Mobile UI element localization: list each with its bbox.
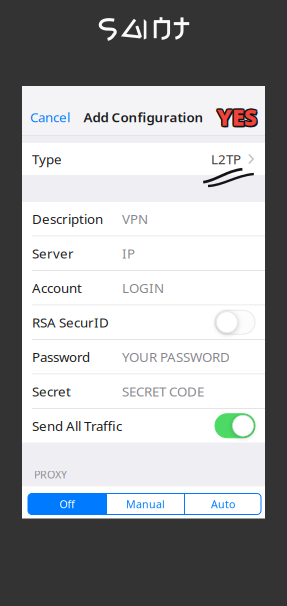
staticText: YES: [218, 101, 258, 131]
button[interactable]: Cancel: [29, 101, 71, 133]
button[interactable]: Auto: [185, 493, 261, 514]
staticText: Off: [59, 497, 74, 511]
staticText: YES: [218, 102, 258, 132]
staticText: YOUR PASSWORD: [122, 348, 230, 366]
staticText: Add Configuration: [83, 108, 203, 126]
button[interactable]: Manual: [107, 493, 184, 514]
staticText: IP: [122, 244, 135, 262]
staticText: Manual: [126, 497, 165, 511]
staticText: Send All Traffic: [32, 417, 122, 435]
staticText: Secret: [32, 382, 71, 400]
staticText: Type: [32, 150, 62, 168]
staticText: RSA SecurID: [32, 313, 109, 331]
staticText: PROXY: [34, 467, 67, 481]
staticText: Description: [32, 210, 103, 228]
staticText: LOGIN: [122, 279, 164, 297]
staticText: YES: [217, 103, 257, 133]
staticText: Server: [32, 244, 74, 262]
button[interactable]: YES: [216, 101, 258, 133]
staticText: Cancel: [30, 108, 70, 126]
staticText: YES: [216, 103, 256, 133]
staticText: YES: [217, 101, 257, 131]
staticText: Account: [32, 279, 82, 297]
staticText: YES: [217, 102, 257, 132]
button[interactable]: Secret: [22, 374, 265, 408]
staticText: VPN: [122, 210, 148, 228]
button[interactable]: Description: [22, 202, 265, 235]
staticText: Password: [32, 348, 90, 366]
button[interactable]: RSA SecurID: [22, 305, 265, 339]
staticText: YES: [218, 103, 258, 133]
button[interactable]: Type: [22, 143, 265, 175]
staticText: L2TP: [211, 150, 241, 168]
button[interactable]: Send All Traffic: [22, 409, 265, 442]
button[interactable]: Account: [22, 271, 265, 304]
staticText: SECRET CODE: [122, 382, 204, 400]
staticText: YES: [216, 102, 256, 132]
button[interactable]: Server: [22, 236, 265, 270]
button[interactable]: Off: [28, 493, 106, 514]
staticText: YES: [216, 101, 256, 131]
button[interactable]: Password: [22, 340, 265, 373]
staticText: Auto: [211, 497, 235, 511]
